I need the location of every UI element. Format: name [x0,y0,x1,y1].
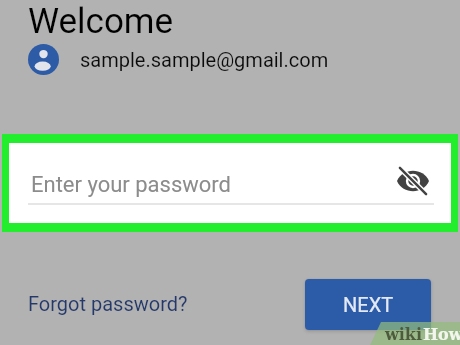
staticText: Forgot password? [28,292,188,315]
staticText: NEXT [343,293,394,316]
staticText: wiki [385,325,423,344]
button[interactable]: NEXT [305,279,431,330]
staticText: sample.sample@gmail.com [80,48,329,71]
button[interactable]: Forgot password? [28,292,188,315]
staticText: Enter your password [31,172,232,198]
button[interactable]: Enter your password [9,143,451,223]
button[interactable]: Show password [395,163,431,199]
staticText: How [423,325,460,344]
staticText: Welcome [28,1,174,42]
